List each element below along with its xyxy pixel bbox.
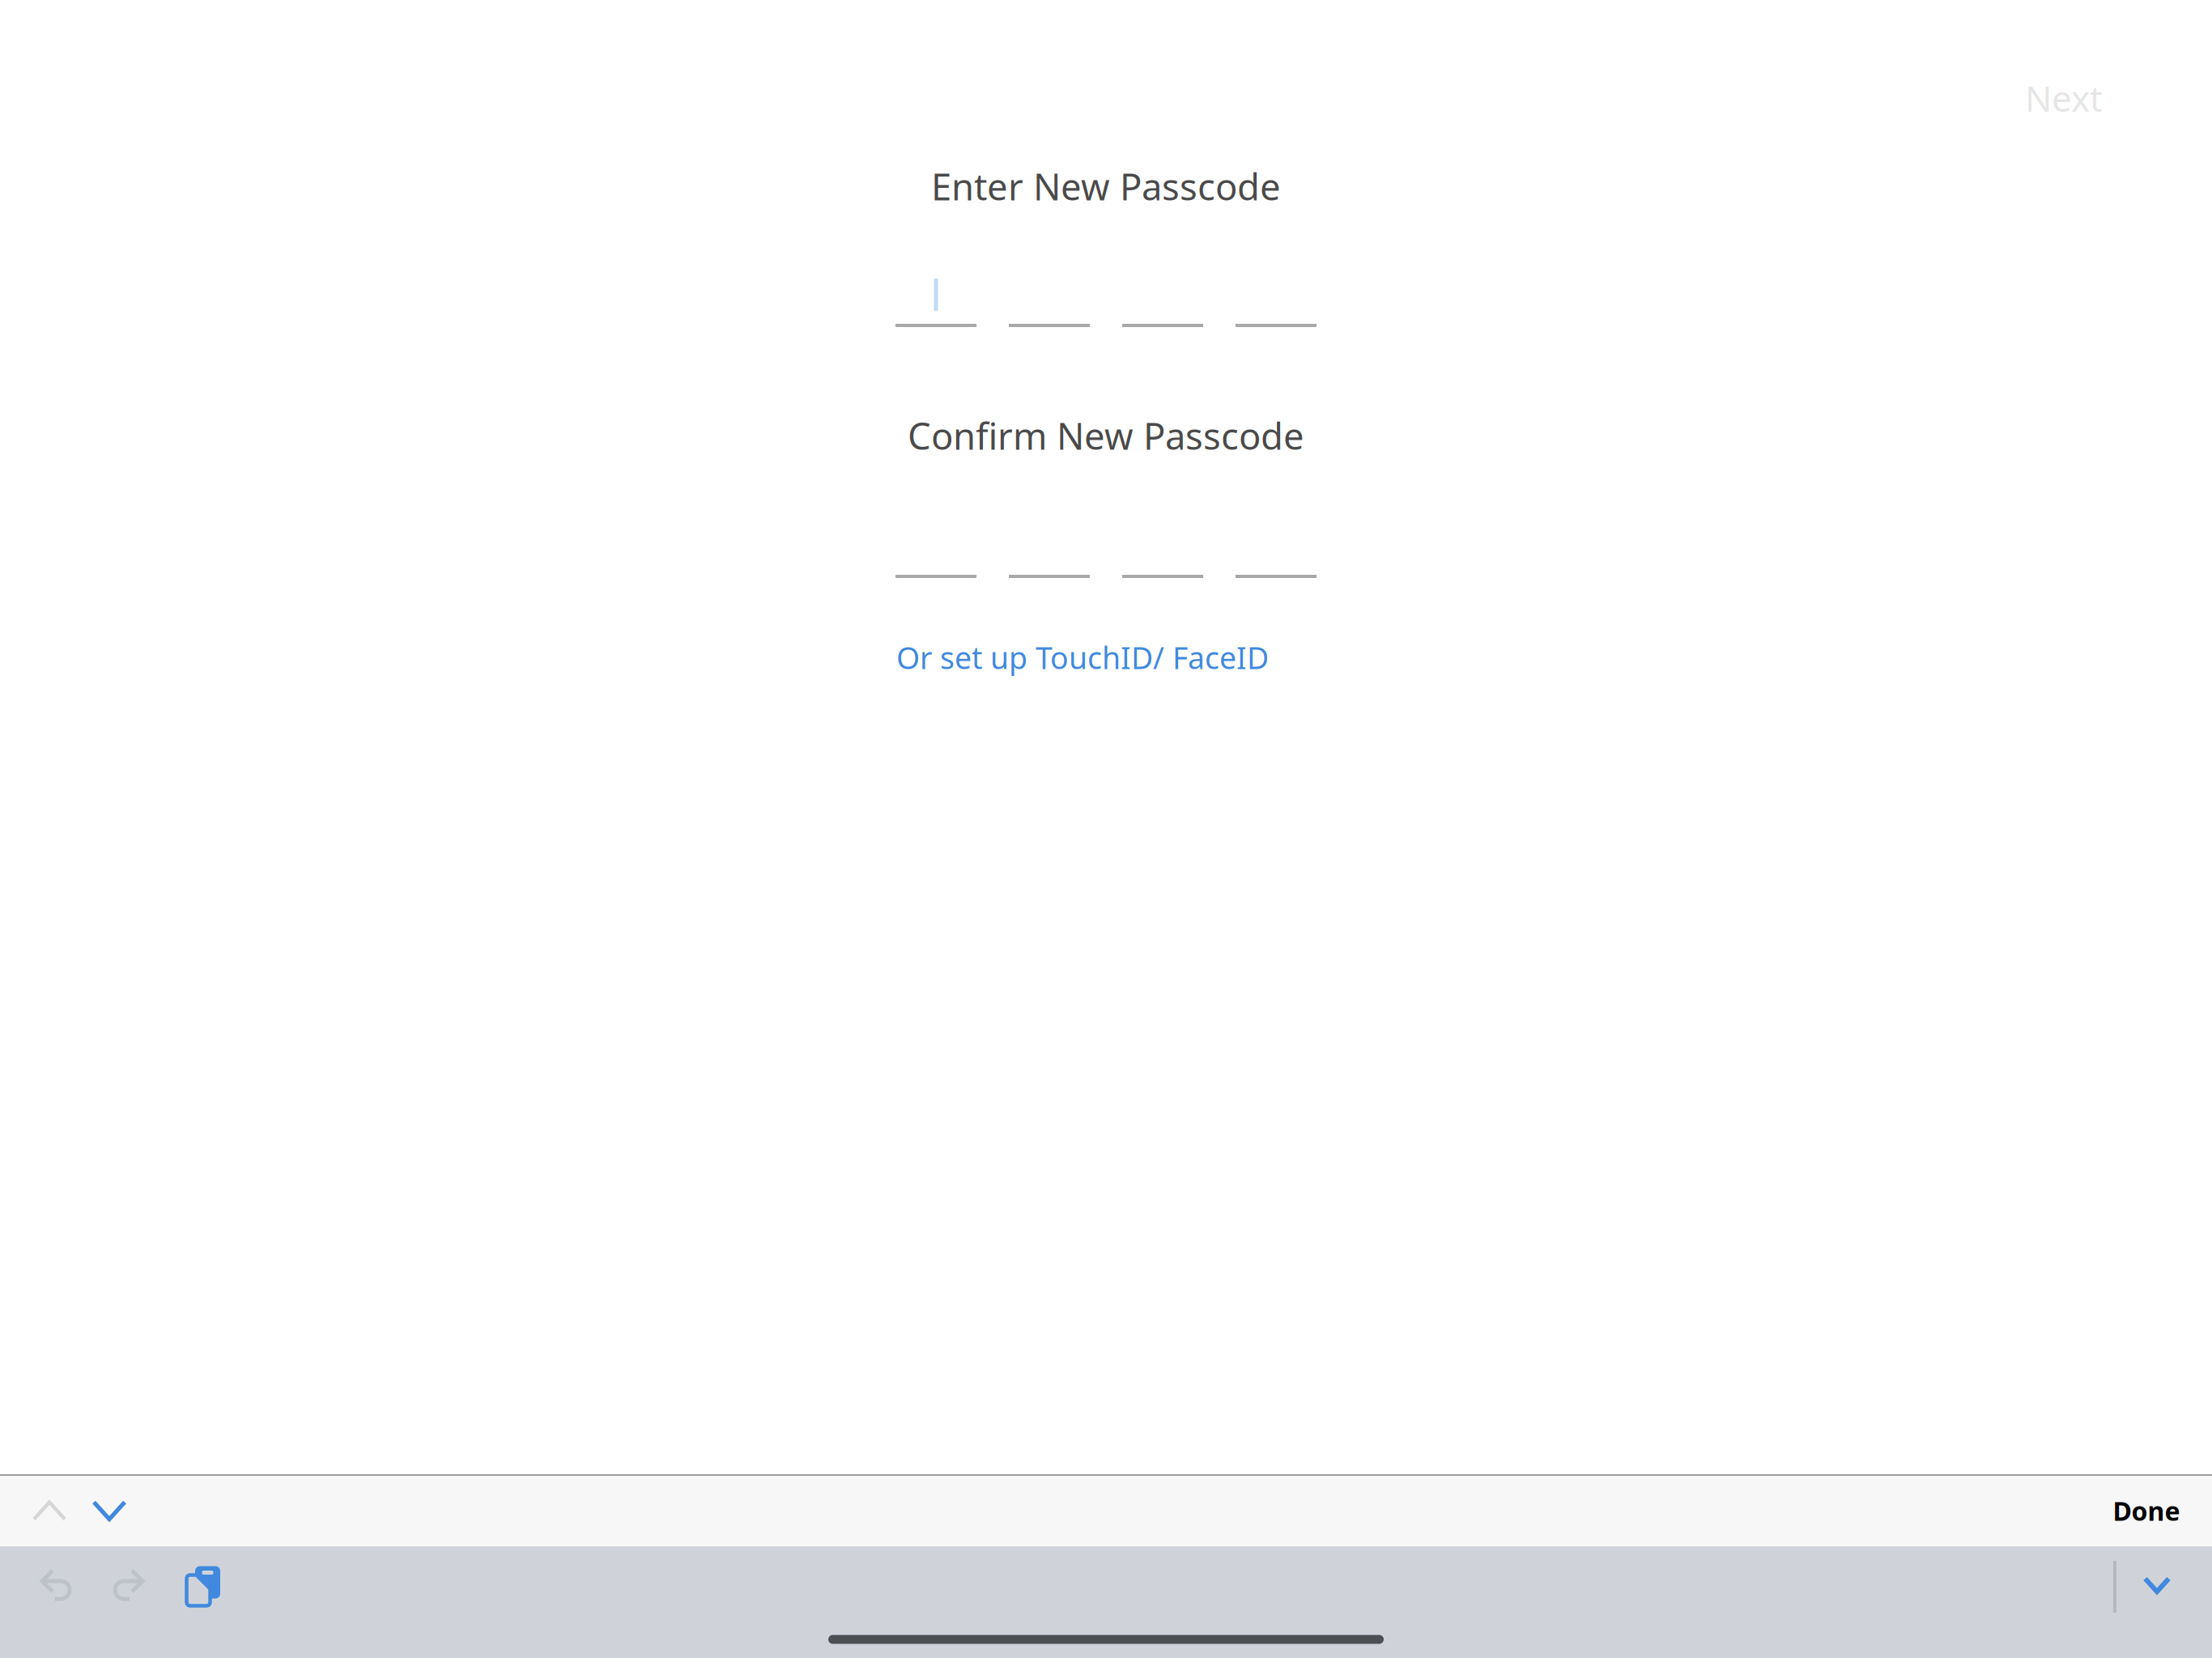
button[interactable]: Next field (67, 1475, 151, 1546)
staticText: Next (2025, 74, 2103, 122)
button[interactable]: Previous field (7, 1475, 91, 1546)
button[interactable]: Hide keyboard (2118, 1546, 2196, 1624)
staticText: Done (2113, 1493, 2180, 1528)
button[interactable]: Done (2082, 1475, 2210, 1546)
button[interactable]: Paste (167, 1547, 240, 1625)
button[interactable]: Redo (92, 1545, 165, 1623)
button[interactable]: Or set up TouchID/ FaceID (880, 631, 1285, 684)
staticText: Enter New Passcode (931, 162, 1281, 211)
button[interactable]: Next (1995, 59, 2133, 137)
staticText: Or set up TouchID/ FaceID (896, 637, 1269, 677)
staticText: Confirm New Passcode (908, 411, 1304, 460)
button[interactable]: Undo (19, 1545, 92, 1623)
